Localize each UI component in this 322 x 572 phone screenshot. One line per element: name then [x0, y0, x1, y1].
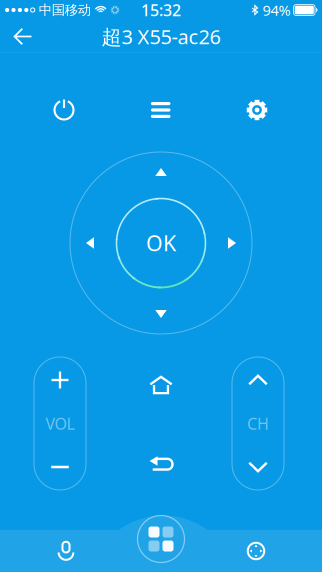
button[interactable]: Left	[71, 214, 109, 272]
button[interactable]: Back	[0, 20, 46, 53]
staticText: OK	[146, 229, 176, 257]
staticText: 中国移动	[39, 2, 91, 18]
button[interactable]: Home	[135, 366, 187, 404]
button[interactable]: Channel down	[232, 444, 284, 490]
button[interactable]: Back	[135, 444, 187, 482]
button[interactable]: Keypad	[132, 513, 190, 565]
button[interactable]: OK	[121, 203, 201, 283]
button[interactable]: Right	[213, 214, 251, 272]
staticText: 超3 X55-ac26	[101, 23, 220, 50]
staticText: 94%	[263, 0, 291, 20]
button[interactable]: Channel up	[232, 357, 284, 403]
button[interactable]: Menu	[128, 90, 192, 130]
button[interactable]: Power	[32, 90, 96, 130]
button[interactable]: Touchpad	[210, 530, 302, 572]
staticText: CH	[247, 413, 269, 434]
button[interactable]: Volume down	[34, 444, 86, 490]
button[interactable]: Down	[132, 295, 190, 333]
button[interactable]: Up	[132, 153, 190, 191]
staticText: 15:32	[141, 0, 181, 21]
button[interactable]: Settings	[225, 90, 289, 130]
button[interactable]: Voice	[20, 530, 112, 572]
button[interactable]: Volume up	[34, 357, 86, 403]
staticText: VOL	[45, 413, 74, 434]
